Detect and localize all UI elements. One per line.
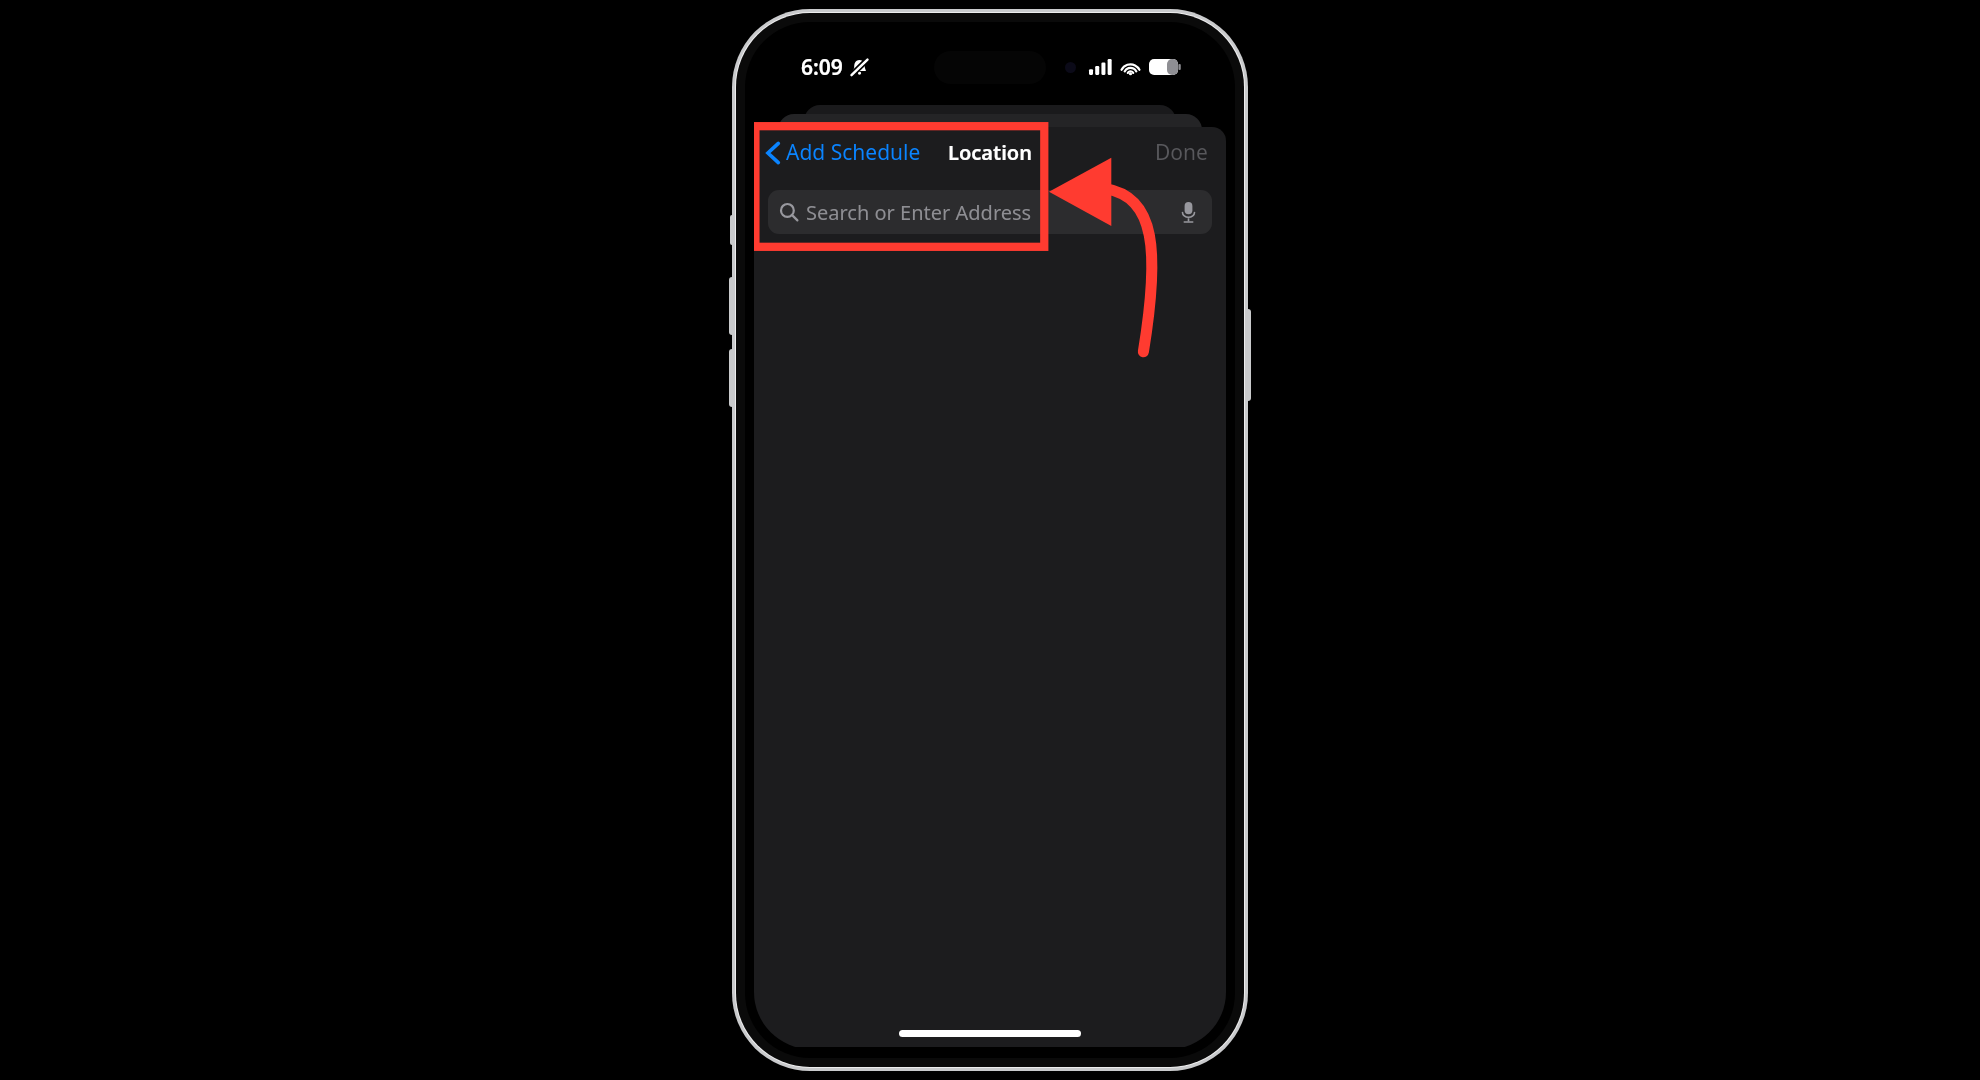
staticText: Add Schedule [786,138,921,167]
button[interactable]: Add Schedule [762,134,925,171]
other: Voice search [1175,199,1201,225]
staticText: Done [1155,138,1208,167]
staticText: Search or Enter Address [806,199,1032,226]
button[interactable]: Done [1149,134,1214,171]
button[interactable]: Search or Enter Address [768,190,1212,234]
staticText: 6:09 [801,53,843,82]
staticText: Location [948,139,1032,166]
